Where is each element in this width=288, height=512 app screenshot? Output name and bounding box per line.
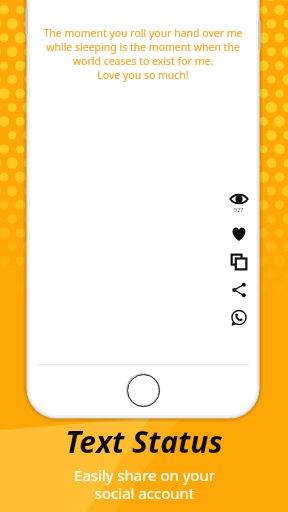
staticText: The moment you roll your hand over me wh… (41, 26, 245, 82)
button[interactable]: Copy (228, 251, 250, 273)
button[interactable]: Share (228, 279, 250, 301)
staticText: 527 (234, 206, 244, 213)
button[interactable]: Share on WhatsApp (228, 307, 250, 329)
button[interactable]: Views 527 (227, 192, 251, 214)
staticText: Easily share on your social account (74, 465, 215, 504)
staticText: Text Status (65, 421, 223, 462)
button[interactable]: Like (228, 223, 250, 245)
